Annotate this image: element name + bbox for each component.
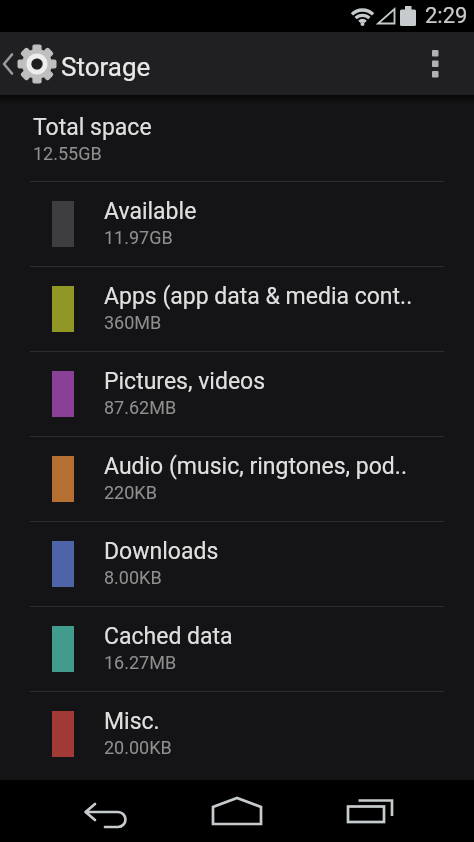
staticText: Cached data (104, 623, 233, 650)
staticText: 12.55GB (33, 143, 102, 164)
button[interactable]: Audio (music, ringtones, pod.. (0, 437, 474, 521)
staticText: 360MB (104, 312, 162, 333)
staticText: Misc. (104, 708, 160, 735)
staticText: Total space (33, 114, 152, 141)
staticText: 8.00KB (104, 567, 162, 588)
button[interactable] (69, 780, 139, 842)
button[interactable]: Available (0, 182, 474, 266)
staticText: 220KB (104, 482, 157, 503)
button[interactable]: Storage (0, 41, 151, 87)
button[interactable] (202, 780, 272, 842)
button[interactable]: Pictures, videos (0, 352, 474, 436)
button[interactable]: Cached data (0, 607, 474, 691)
staticText: 2:29 (425, 3, 468, 29)
staticText: Audio (music, ringtones, pod.. (104, 453, 407, 480)
staticText: 20.00KB (104, 737, 172, 758)
button[interactable]: Downloads (0, 522, 474, 606)
staticText: 16.27MB (104, 652, 177, 673)
button[interactable]: Total space (0, 104, 474, 181)
staticText: Downloads (104, 538, 219, 565)
staticText: Storage (61, 52, 151, 82)
staticText: 87.62MB (104, 397, 177, 418)
staticText: Available (104, 198, 197, 225)
button[interactable]: Misc. (0, 692, 474, 776)
button[interactable] (335, 780, 405, 842)
button[interactable]: Apps (app data & media cont.. (0, 267, 474, 351)
staticText: Apps (app data & media cont.. (104, 283, 413, 310)
staticText: Pictures, videos (104, 368, 266, 395)
staticText: 11.97GB (104, 227, 173, 248)
button[interactable] (413, 32, 457, 95)
